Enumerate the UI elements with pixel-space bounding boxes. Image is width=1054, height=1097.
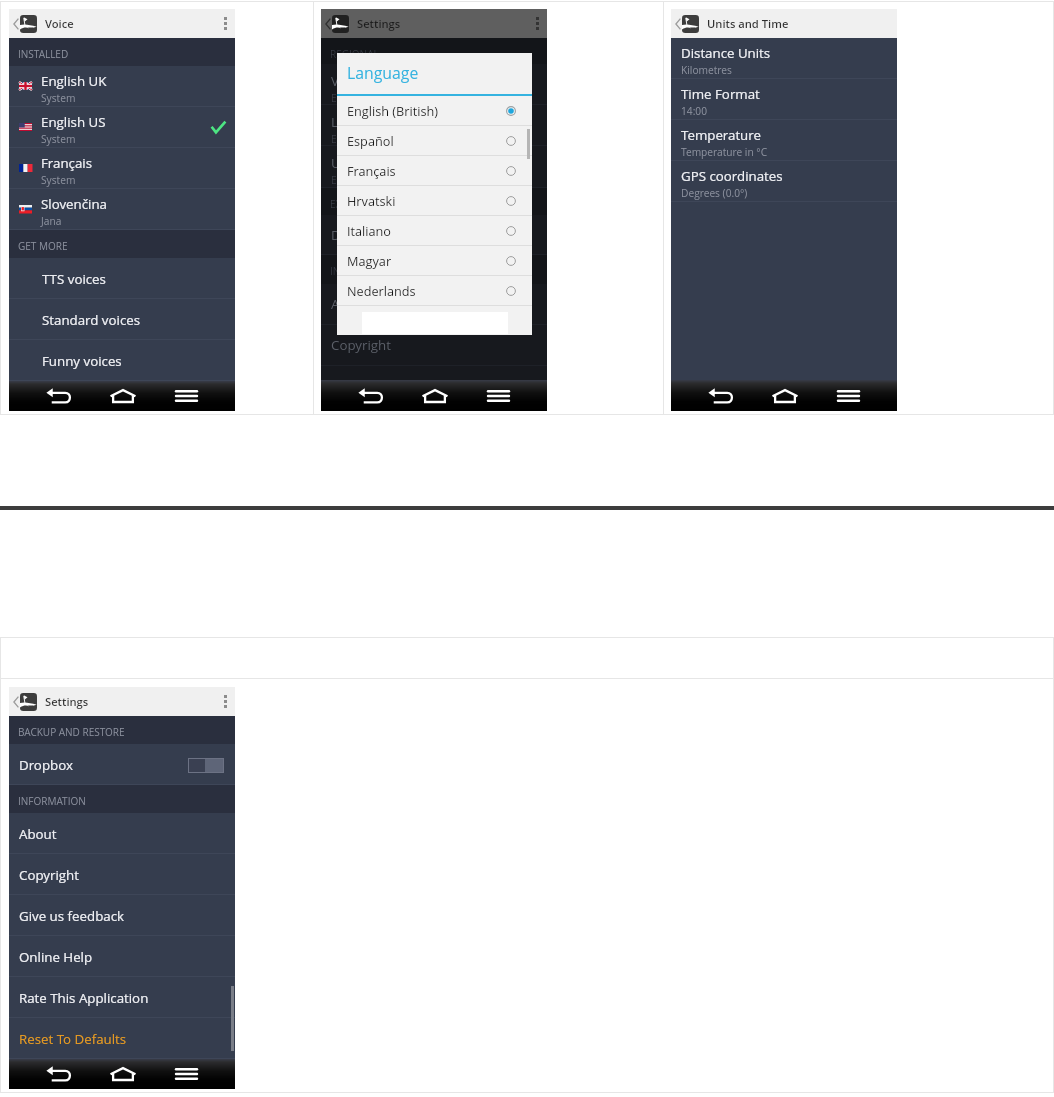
staticText: Units and Time [331, 154, 425, 172]
staticText: English UK [41, 72, 107, 90]
staticText: English UK [331, 91, 382, 104]
staticText: Extended [331, 173, 376, 187]
button[interactable]: Italiano [337, 216, 532, 246]
button[interactable]: Slovenčina [9, 189, 235, 230]
staticText: REGIONAL [330, 47, 379, 61]
button[interactable]: GPS coordinates [671, 161, 897, 202]
staticText: INFORMATION [330, 264, 398, 278]
button[interactable]: Nederlands [337, 276, 532, 306]
staticText: Standard voices [42, 311, 141, 329]
button[interactable]: Home [421, 381, 449, 411]
staticText: Français [41, 154, 93, 172]
staticText: Units and Time [707, 16, 789, 31]
button[interactable]: Magyar [337, 246, 532, 276]
staticText: Settings [357, 16, 401, 31]
button[interactable]: Navigate up [9, 12, 39, 36]
staticText: English [331, 132, 365, 145]
staticText: Language [331, 113, 392, 131]
button[interactable]: Back [44, 381, 74, 411]
staticText: System [41, 173, 76, 187]
staticText: INFORMATION [18, 794, 86, 808]
staticText: Rate This Application [19, 989, 149, 1007]
button[interactable]: Temperature [671, 120, 897, 161]
button[interactable]: More options [216, 9, 235, 38]
button[interactable]: Navigate up [321, 12, 351, 36]
staticText: System [41, 91, 76, 105]
staticText: Settings [45, 694, 89, 709]
staticText: Copyright [331, 336, 391, 354]
staticText: Español [347, 132, 394, 149]
staticText: English US [41, 113, 106, 131]
button[interactable]: Back [356, 380, 386, 411]
staticText: Jana [41, 214, 62, 228]
button[interactable]: Recent apps [172, 1059, 200, 1089]
staticText: Time Format [681, 85, 760, 103]
staticText: Slovenčina [41, 195, 107, 213]
button[interactable]: Back [44, 1059, 74, 1089]
staticText: Funny voices [42, 352, 122, 370]
staticText: 14:00 [681, 104, 708, 118]
button[interactable]: TTS voices [9, 258, 235, 299]
button[interactable]: Recent apps [172, 381, 200, 411]
button[interactable]: Home [109, 1059, 137, 1089]
button[interactable]: Recent apps [484, 381, 512, 411]
staticText: TTS voices [42, 270, 106, 288]
button[interactable]: Dropbox [9, 744, 235, 785]
button[interactable]: Hrvatski [337, 186, 532, 216]
staticText: Voice [45, 16, 74, 31]
button[interactable]: Recent apps [834, 381, 862, 411]
staticText: Online Help [19, 948, 93, 966]
staticText: Degrees (0.0°) [681, 186, 748, 200]
button[interactable]: Reset To Defaults [9, 1018, 235, 1059]
button[interactable]: English (British) [337, 96, 532, 126]
staticText: Temperature [681, 126, 761, 144]
staticText: Reset To Defaults [19, 1030, 127, 1048]
staticText: Nederlands [347, 282, 416, 299]
button[interactable]: Rate This Application [9, 977, 235, 1018]
button[interactable]: Copyright [9, 854, 235, 895]
button[interactable]: Home [771, 381, 799, 411]
button[interactable]: Online Help [9, 936, 235, 977]
button[interactable]: Funny voices [9, 340, 235, 381]
staticText: Français [347, 162, 396, 179]
staticText: System [41, 132, 76, 146]
button[interactable]: Standard voices [9, 299, 235, 340]
staticText: Magyar [347, 252, 392, 269]
staticText: INSTALLED [18, 47, 69, 61]
staticText: Distance Units [681, 44, 771, 62]
staticText: Display [331, 226, 377, 244]
button[interactable]: Back [706, 380, 736, 411]
button[interactable]: Français [337, 156, 532, 186]
button[interactable]: Home [109, 381, 137, 411]
button[interactable]: Give us feedback [9, 895, 235, 936]
button[interactable]: Dropbox toggle [188, 758, 224, 773]
staticText: Copyright [19, 866, 79, 884]
staticText: About [19, 825, 57, 843]
button[interactable]: More options [528, 9, 547, 38]
button[interactable]: Navigate up [671, 12, 701, 36]
button[interactable]: English UK [9, 66, 235, 107]
staticText: EXTENDED [330, 197, 381, 211]
button[interactable]: Français [9, 148, 235, 189]
staticText: About [331, 295, 369, 313]
staticText: GET MORE [18, 239, 68, 253]
button[interactable]: Distance Units [671, 38, 897, 79]
button[interactable]: Navigate up [9, 690, 39, 714]
staticText: Give us feedback [19, 907, 125, 925]
staticText: GPS coordinates [681, 167, 783, 185]
staticText: Language [347, 62, 419, 84]
staticText: Hrvatski [347, 192, 396, 209]
button[interactable]: English US [9, 107, 235, 148]
staticText: Voice [331, 72, 364, 90]
staticText: Kilometres [681, 63, 732, 77]
staticText: Italiano [347, 222, 391, 239]
staticText: Dropbox [19, 756, 73, 774]
button[interactable]: More options [216, 687, 235, 716]
button[interactable]: Español [337, 126, 532, 156]
staticText: English (British) [347, 102, 438, 119]
button[interactable]: About [9, 813, 235, 854]
button[interactable]: Time Format [671, 79, 897, 120]
staticText: Temperature in °C [681, 145, 768, 159]
staticText: BACKUP AND RESTORE [18, 725, 125, 739]
